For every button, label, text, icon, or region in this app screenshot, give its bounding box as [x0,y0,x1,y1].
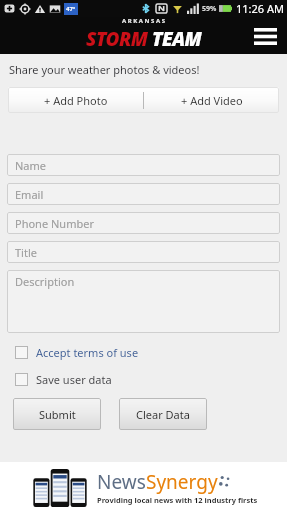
button[interactable]: NewsSynergy advertisement [0,462,287,512]
staticText: Title [15,245,37,260]
staticText: Clear Data [136,407,190,422]
button[interactable]: Accept terms of use [15,345,139,360]
button[interactable]: Description [7,270,280,333]
staticText: Description [15,274,75,289]
staticText: Accept terms of use [36,345,139,360]
staticText: Providing local news with 12 industry fi… [97,495,258,505]
button[interactable]: Open menu [252,24,278,48]
button[interactable]: Name [7,154,280,176]
staticText: Name [15,158,47,173]
staticText: + Add Video [181,93,243,108]
staticText: Save user data [36,372,112,387]
staticText: STORM [86,26,148,52]
staticText: Share your weather photos & videos! [9,62,200,77]
staticText: + Add Photo [44,93,108,108]
button[interactable]: Title [7,241,280,263]
button[interactable]: + Add Photo [8,87,143,113]
staticText: Phone Number [15,216,94,231]
staticText: 47° [66,5,76,13]
staticText: News [97,469,146,495]
staticText: Email [15,187,44,202]
staticText: Synergy [146,469,218,495]
staticText: 11:26 AM [236,1,284,16]
staticText: 59% [202,4,217,14]
button[interactable]: + Add Video [144,87,279,113]
button[interactable]: Email [7,183,280,205]
staticText: TEAM [152,26,202,52]
button[interactable]: Clear Data [119,398,207,430]
button[interactable]: Save user data [15,372,112,387]
button[interactable]: Phone Number [7,212,280,234]
staticText: Submit [39,407,76,422]
staticText: ARKANSAS [122,17,167,25]
button[interactable]: Submit [13,398,101,430]
